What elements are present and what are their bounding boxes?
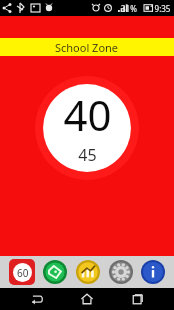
staticText: 40 (63, 86, 112, 143)
button[interactable]: Home (72, 288, 102, 310)
staticText: 31% (121, 3, 137, 14)
button[interactable]: Speed limit 40 (22, 63, 152, 193)
button[interactable]: Settings (109, 260, 133, 284)
button[interactable]: Back (21, 288, 51, 310)
button[interactable]: Recent apps (123, 288, 153, 310)
button[interactable]: Speed limit (9, 259, 35, 285)
staticText: 19:35 (150, 3, 171, 14)
button[interactable]: School Zone (0, 38, 174, 56)
button[interactable]: Statistics (76, 260, 100, 284)
button[interactable]: Info (141, 260, 165, 284)
button[interactable]: Tag (43, 260, 67, 284)
staticText: School Zone (55, 40, 119, 55)
staticText: 60 (17, 266, 29, 280)
staticText: 45 (78, 144, 97, 166)
